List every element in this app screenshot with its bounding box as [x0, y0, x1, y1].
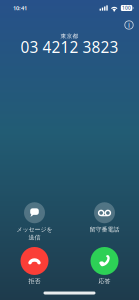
staticText: 拒否 — [28, 277, 40, 285]
staticText: 10:41 — [13, 4, 27, 12]
staticText: 留守番電話 — [89, 226, 119, 233]
button[interactable]: 通話情報 — [121, 17, 137, 33]
staticText: 東京都 — [60, 32, 78, 40]
staticText: 03 4212 3823 — [20, 36, 118, 58]
button[interactable]: 応答 — [77, 247, 131, 285]
button[interactable]: 拒否 — [7, 247, 61, 285]
staticText: 送信 — [28, 234, 40, 241]
staticText: メッセージを — [16, 226, 52, 233]
button[interactable]: メッセージを送信 — [7, 202, 61, 238]
button[interactable]: 留守番電話 — [77, 202, 131, 238]
staticText: i — [128, 20, 130, 30]
staticText: 100 — [122, 5, 131, 11]
staticText: 応答 — [98, 277, 110, 285]
